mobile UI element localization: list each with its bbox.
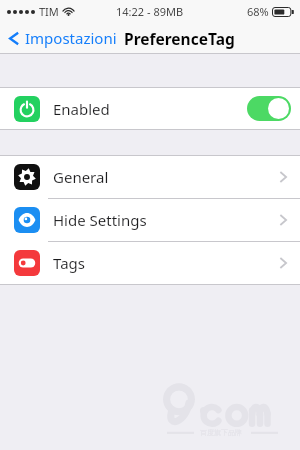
staticText: 百度旗下品牌 (200, 428, 242, 437)
staticText: 14:22 - 89MB (116, 4, 184, 19)
staticText: Tags (53, 253, 85, 273)
staticText: Enabled (53, 99, 110, 119)
staticText: Hide Settings (53, 210, 147, 230)
button[interactable]: Hide Settings (0, 199, 300, 241)
staticText: Impostazioni (25, 28, 117, 48)
button[interactable]: Enabled (0, 88, 300, 129)
button[interactable]: Tags (0, 242, 300, 284)
staticText: PreferenceTag (124, 28, 235, 49)
staticText: TIM (39, 4, 59, 19)
button[interactable]: Enabled toggle (247, 96, 291, 121)
staticText: 68% (247, 4, 269, 19)
staticText: General (53, 167, 109, 187)
button[interactable]: Impostazioni (0, 28, 125, 48)
button[interactable]: General (0, 156, 300, 198)
